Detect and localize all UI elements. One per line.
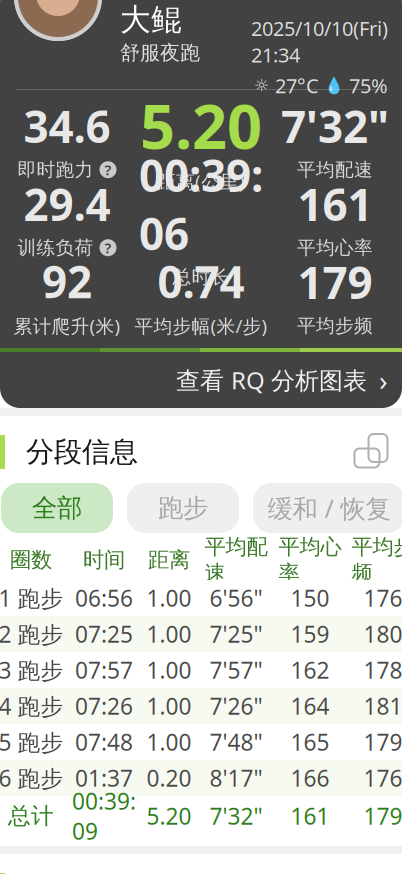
staticText: 181 — [363, 691, 402, 721]
button[interactable]: Share — [350, 430, 394, 474]
button[interactable]: 缓和 / 恢复 — [253, 483, 402, 533]
staticText: 距离(公里) — [157, 169, 245, 194]
staticText: 0.74 — [157, 252, 244, 310]
staticText: 平均心率 — [297, 236, 373, 259]
staticText: ? — [104, 238, 111, 257]
staticText: 176 — [363, 583, 402, 613]
staticText: 180 — [363, 619, 402, 649]
staticText: 5 跑步 — [0, 727, 63, 757]
staticText: 平均步频 — [351, 534, 402, 586]
staticText: 7'26" — [209, 691, 262, 721]
staticText: 总时长 — [172, 265, 229, 288]
staticText: 01:37 — [75, 763, 133, 793]
staticText: 7'57" — [209, 655, 262, 685]
staticText: 平均心率 — [278, 534, 341, 586]
staticText: 总计 — [8, 802, 54, 830]
staticText: 27°C — [275, 72, 319, 99]
staticText: 00:39:06 — [139, 146, 263, 262]
staticText: ? — [104, 160, 111, 179]
staticText: 累计爬升(米) — [13, 313, 120, 338]
button[interactable]: 查看 RQ 分析图表 — [0, 352, 402, 408]
staticText: 179 — [363, 727, 402, 757]
button[interactable]: 全部 — [1, 483, 113, 533]
staticText: 162 — [290, 655, 329, 685]
staticText: 7'32" — [209, 801, 262, 831]
staticText: 1.00 — [146, 727, 191, 757]
staticText: 大鲲 — [120, 1, 182, 39]
staticText: 1.00 — [146, 619, 191, 649]
staticText: 150 — [290, 583, 329, 613]
staticText: 平均配速 — [297, 158, 373, 181]
staticText: 舒服夜跑 — [120, 41, 200, 65]
staticText: 7'25" — [209, 619, 262, 649]
staticText: 92 — [42, 252, 92, 310]
staticText: 平均配速 — [204, 534, 267, 586]
staticText: 178 — [363, 655, 402, 685]
staticText: 距离 — [148, 547, 190, 573]
staticText: 2025/10/10(Fri) 21:34 — [251, 15, 388, 68]
staticText: 165 — [290, 727, 329, 757]
staticText: 1.00 — [146, 691, 191, 721]
staticText: 07:26 — [75, 691, 133, 721]
staticText: › — [379, 361, 388, 399]
staticText: 164 — [290, 691, 329, 721]
staticText: 平均步频 — [297, 314, 373, 337]
staticText: 全部 — [32, 492, 82, 523]
staticText: 5.20 — [140, 84, 262, 166]
staticText: 07:57 — [75, 655, 133, 685]
staticText: 179 — [297, 253, 372, 311]
button[interactable]: 跑步 — [127, 483, 239, 533]
staticText: 6'56" — [209, 583, 262, 613]
staticText: 0.20 — [146, 763, 191, 793]
staticText: 2 跑步 — [0, 619, 63, 649]
staticText: 07:48 — [75, 727, 133, 757]
staticText: 查看 RQ 分析图表 — [176, 364, 367, 396]
staticText: 3 跑步 — [0, 655, 63, 685]
staticText: 6 跑步 — [0, 763, 63, 793]
staticText: 00:39:09 — [72, 786, 136, 846]
staticText: 训练负荷 — [17, 236, 93, 259]
staticText: 1 跑步 — [0, 583, 63, 613]
staticText: 时间 — [83, 547, 125, 573]
staticText: 29.4 — [23, 175, 110, 233]
staticText: 159 — [290, 619, 329, 649]
staticText: 平均步幅(米/步) — [134, 313, 267, 338]
staticText: 💧 — [324, 76, 344, 95]
staticText: 8'17" — [209, 763, 262, 793]
staticText: 圈数 — [10, 547, 52, 573]
staticText: 179 — [363, 801, 402, 831]
staticText: 06:56 — [75, 583, 133, 613]
staticText: ☼ — [254, 76, 270, 95]
staticText: 07:25 — [75, 619, 133, 649]
staticText: 5.20 — [146, 801, 191, 831]
staticText: 34.6 — [23, 97, 110, 155]
staticText: 7'48" — [209, 727, 262, 757]
staticText: 75% — [349, 72, 388, 99]
staticText: 161 — [297, 175, 372, 233]
staticText: 4 跑步 — [0, 691, 63, 721]
staticText: 161 — [290, 801, 329, 831]
staticText: 176 — [363, 763, 402, 793]
staticText: 分段信息 — [26, 435, 138, 469]
staticText: 即时跑力 — [17, 158, 93, 181]
staticText: 跑步 — [158, 492, 208, 523]
staticText: 1.00 — [146, 655, 191, 685]
staticText: 166 — [290, 763, 329, 793]
staticText: 1.00 — [146, 583, 191, 613]
staticText: 缓和 / 恢复 — [267, 491, 390, 525]
staticText: 7'32" — [281, 97, 389, 155]
